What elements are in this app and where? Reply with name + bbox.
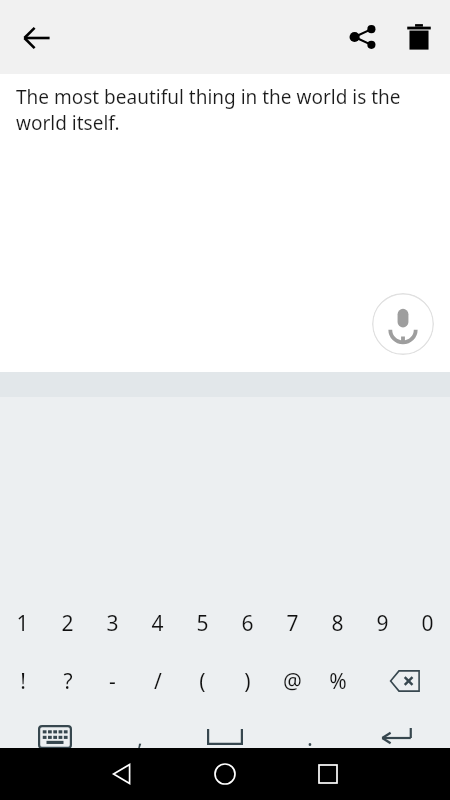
button[interactable]: ? xyxy=(45,661,90,701)
button[interactable]: Backspace xyxy=(360,661,450,701)
button[interactable]: 2 xyxy=(45,603,90,643)
staticText: ? xyxy=(63,667,73,696)
button[interactable]: 7 xyxy=(270,603,315,643)
button[interactable]: 1 xyxy=(0,603,45,643)
staticText: ! xyxy=(20,667,26,696)
staticText: 3 xyxy=(106,609,119,638)
button[interactable]: 6 xyxy=(225,603,270,643)
staticText: The most beautiful thing in the world is… xyxy=(16,84,410,135)
button[interactable]: ! xyxy=(0,661,45,701)
staticText: @ xyxy=(283,667,302,696)
button[interactable]: Switch keyboard xyxy=(32,717,78,757)
button[interactable]: Delete xyxy=(394,12,444,62)
staticText: - xyxy=(109,667,116,696)
staticText: 6 xyxy=(241,609,254,638)
button[interactable]: 5 xyxy=(180,603,225,643)
staticText: 5 xyxy=(196,609,209,638)
button[interactable]: 8 xyxy=(315,603,360,643)
staticText: % xyxy=(329,667,347,696)
staticText: 9 xyxy=(376,609,389,638)
button[interactable]: Enter xyxy=(372,717,422,757)
button[interactable]: / xyxy=(135,661,180,701)
button[interactable]: - xyxy=(90,661,135,701)
staticText: 2 xyxy=(61,609,74,638)
button[interactable]: Voice input xyxy=(372,293,434,355)
staticText: ) xyxy=(244,667,251,696)
button[interactable]: Recent apps xyxy=(288,748,368,800)
button[interactable]: Home xyxy=(185,748,265,800)
staticText: ( xyxy=(199,667,206,696)
button[interactable]: 3 xyxy=(90,603,135,643)
staticText: 8 xyxy=(331,609,344,638)
button[interactable]: @ xyxy=(270,661,315,701)
button[interactable]: Space xyxy=(190,717,260,757)
button[interactable]: 9 xyxy=(360,603,405,643)
button[interactable]: Back xyxy=(82,748,162,800)
button[interactable]: ) xyxy=(225,661,270,701)
staticText: 0 xyxy=(421,609,434,638)
button[interactable]: 4 xyxy=(135,603,180,643)
button[interactable]: ( xyxy=(180,661,225,701)
staticText: 4 xyxy=(151,609,164,638)
staticText: . xyxy=(307,722,313,752)
button[interactable]: . xyxy=(288,717,332,757)
button[interactable]: % xyxy=(315,661,360,701)
staticText: / xyxy=(154,667,162,696)
button[interactable]: , xyxy=(118,717,162,757)
staticText: 7 xyxy=(286,609,299,638)
button[interactable]: 0 xyxy=(405,603,450,643)
button[interactable]: Share xyxy=(338,12,388,62)
staticText: 1 xyxy=(16,609,29,638)
staticText: , xyxy=(137,722,143,752)
button[interactable]: Back xyxy=(11,12,63,64)
